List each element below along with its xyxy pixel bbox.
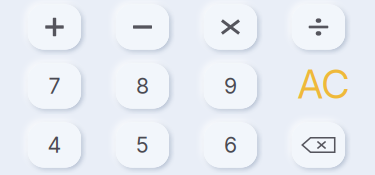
staticText: 9 xyxy=(224,73,237,99)
button[interactable]: Multiply xyxy=(204,4,257,49)
button[interactable]: AC xyxy=(292,63,345,108)
button[interactable]: 9 xyxy=(204,63,257,108)
button[interactable]: 8 xyxy=(116,63,169,108)
staticText: 7 xyxy=(48,73,60,99)
button[interactable]: 5 xyxy=(116,122,169,167)
staticText: 4 xyxy=(47,132,61,158)
staticText: 5 xyxy=(136,132,149,158)
button[interactable]: 4 xyxy=(28,122,81,167)
button[interactable]: Add xyxy=(28,4,81,49)
staticText: 8 xyxy=(136,73,149,99)
button[interactable]: 6 xyxy=(204,122,257,167)
button[interactable]: Divide xyxy=(292,4,345,49)
button[interactable]: Delete xyxy=(292,122,345,167)
button[interactable]: Subtract xyxy=(116,4,169,49)
staticText: 6 xyxy=(224,132,237,158)
button[interactable]: 7 xyxy=(28,63,81,108)
staticText: AC xyxy=(297,62,349,107)
